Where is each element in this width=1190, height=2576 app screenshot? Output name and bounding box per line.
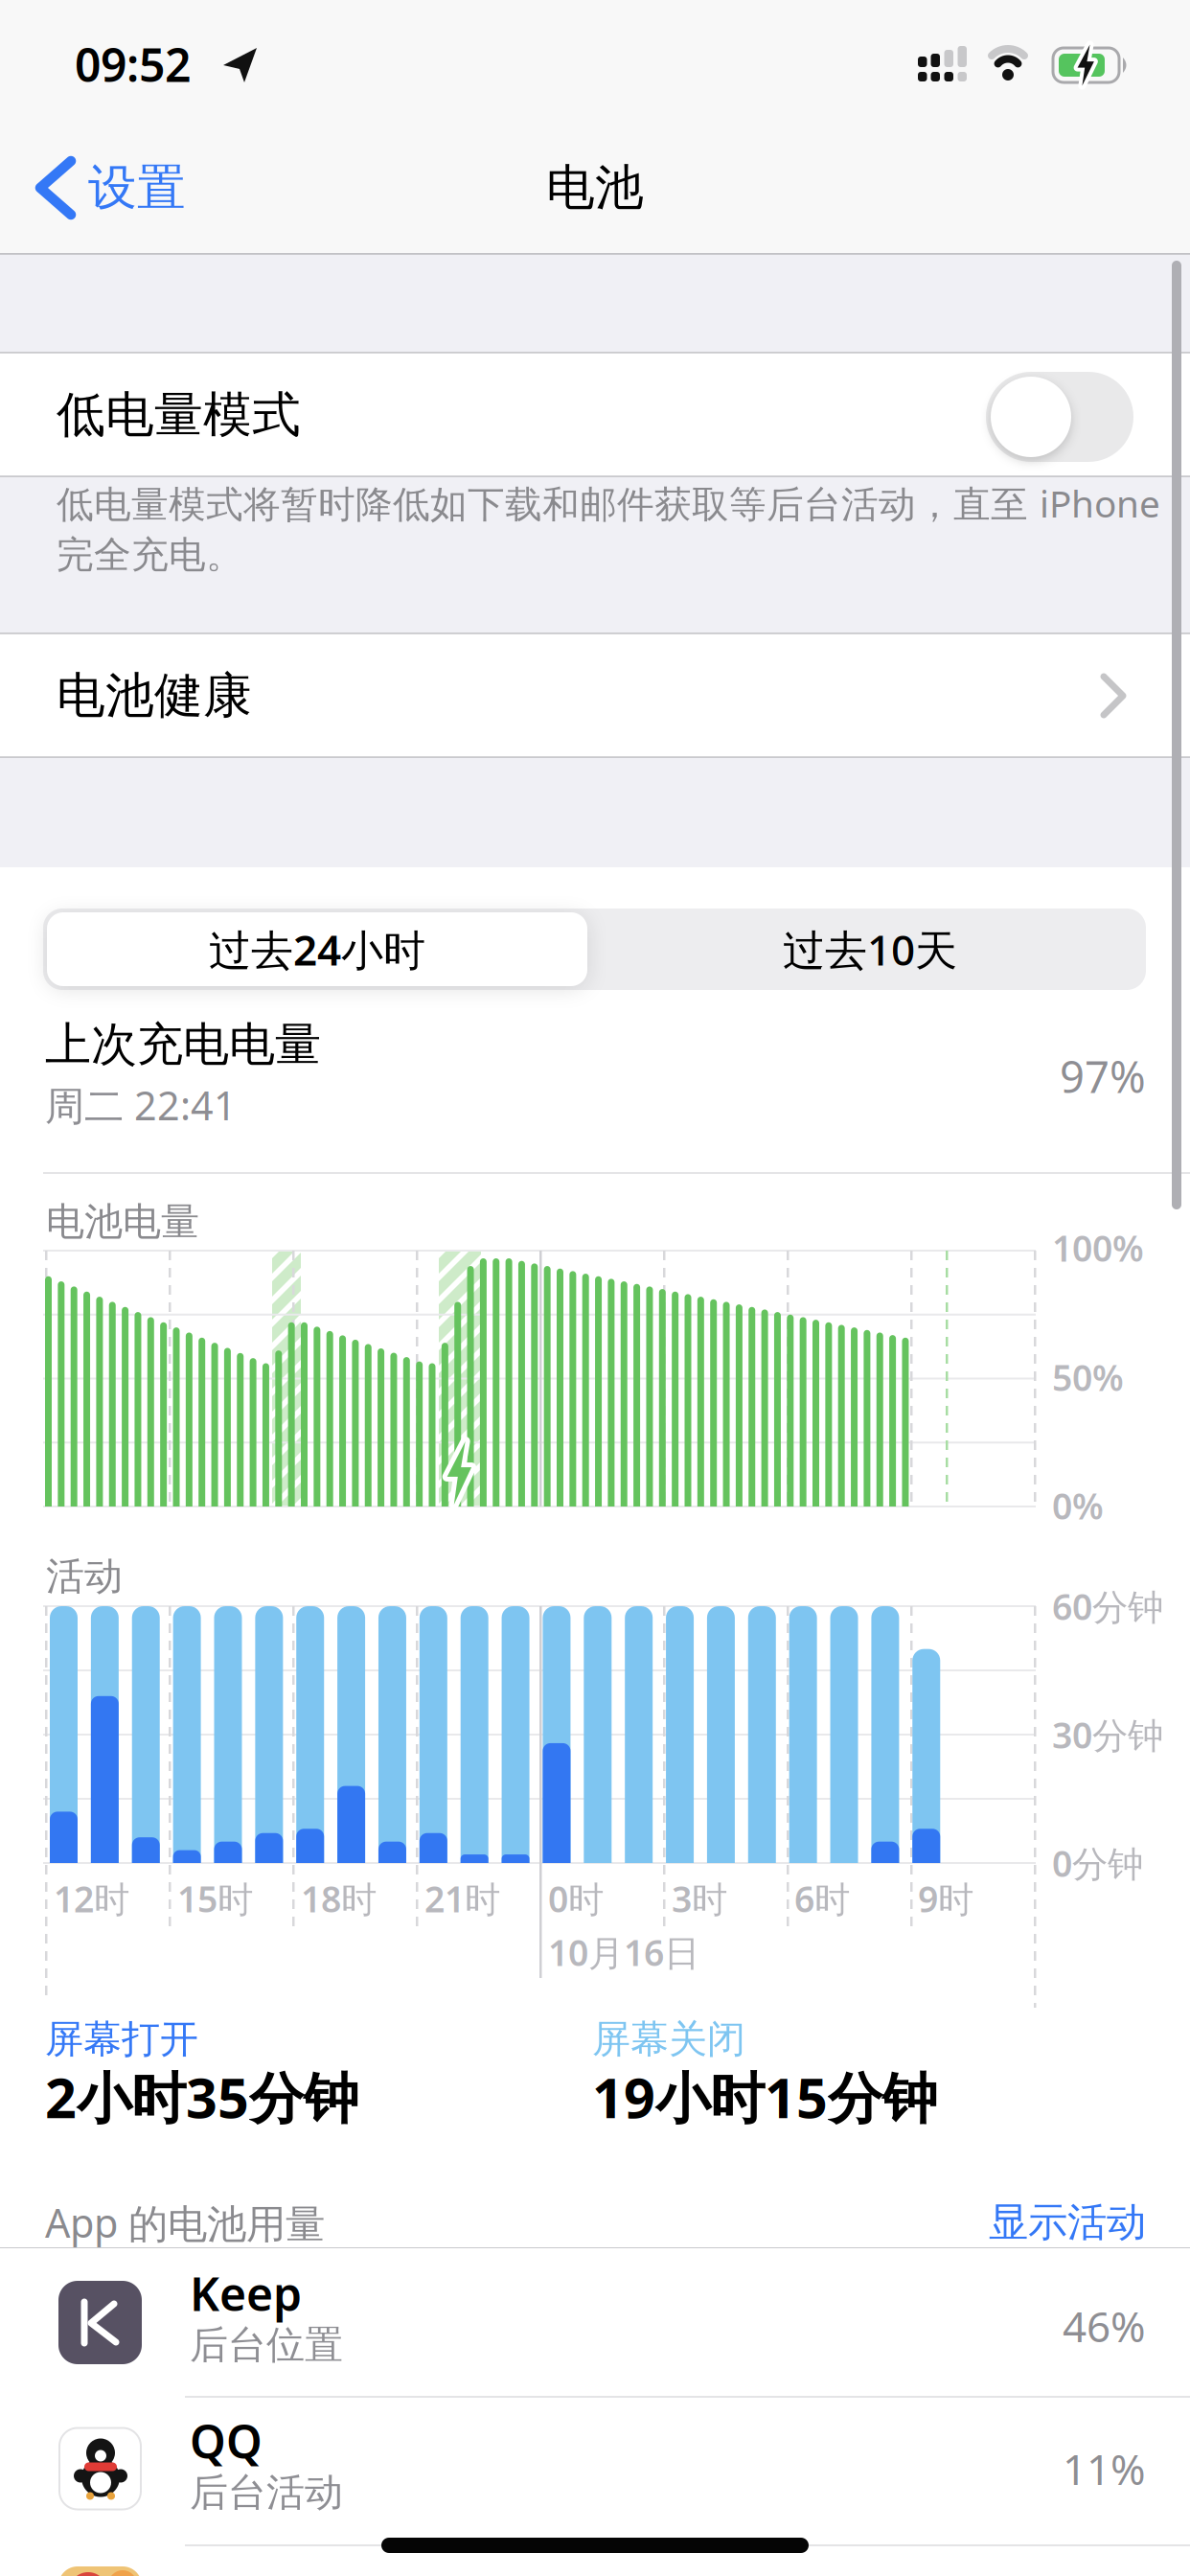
staticText: 9时 <box>918 1875 973 1922</box>
staticText: 0分钟 <box>1052 1839 1143 1887</box>
staticText: 低电量模式 <box>57 385 301 445</box>
staticText: 电池 <box>546 158 644 218</box>
button[interactable]: 设置 <box>0 126 278 249</box>
staticText: QQ <box>190 2410 263 2471</box>
button[interactable]: 显示活动 <box>858 2189 1146 2256</box>
button[interactable]: QQ <box>0 2398 1190 2543</box>
staticText: 19小时15分钟 <box>592 2060 937 2133</box>
staticText: 11% <box>1063 2441 1146 2497</box>
staticText: 15时 <box>177 1875 253 1922</box>
staticText: 设置 <box>88 158 186 218</box>
button[interactable]: 过去10天 <box>602 912 1138 986</box>
staticText: 09:52 <box>75 34 191 95</box>
staticText: 0% <box>1052 1482 1104 1529</box>
button[interactable]: 电池健康 <box>0 634 1190 756</box>
staticText: 后台位置 <box>190 2321 343 2369</box>
staticText: 3时 <box>672 1875 727 1922</box>
staticText: 活动 <box>46 1553 123 1600</box>
staticText: 97% <box>1060 1047 1146 1105</box>
staticText: 电池电量 <box>46 1198 199 1245</box>
staticText: 0时 <box>548 1875 604 1922</box>
staticText: 21时 <box>424 1875 500 1922</box>
staticText: 屏幕关闭 <box>592 2016 745 2063</box>
staticText: 46% <box>1063 2298 1146 2354</box>
staticText: 18时 <box>301 1875 377 1922</box>
staticText: 电池健康 <box>57 666 252 726</box>
button[interactable]: 过去24小时 <box>47 912 587 986</box>
staticText: 100% <box>1052 1224 1144 1272</box>
staticText: 12时 <box>54 1875 129 1922</box>
staticText: 60分钟 <box>1052 1582 1163 1630</box>
staticText: 上次充电电量 <box>45 1016 321 1073</box>
staticText: 10月16日 <box>548 1928 699 1976</box>
staticText: 显示活动 <box>989 2198 1146 2247</box>
staticText: 2小时35分钟 <box>45 2060 358 2133</box>
staticText: 完全充电。 <box>57 532 243 578</box>
staticText: 过去10天 <box>783 921 957 977</box>
staticText: Keep <box>190 2263 302 2324</box>
button[interactable]: 低电量模式 <box>986 372 1133 462</box>
staticText: App 的电池用量 <box>45 2196 325 2249</box>
staticText: 后台活动 <box>190 2469 343 2516</box>
staticText: 周二 22:41 <box>45 1079 237 1131</box>
staticText: 50% <box>1052 1353 1124 1401</box>
staticText: 屏幕打开 <box>45 2016 198 2063</box>
staticText: 过去24小时 <box>209 921 425 977</box>
staticText: 低电量模式将暂时降低如下载和邮件获取等后台活动，直至 iPhone <box>57 478 1160 528</box>
staticText: 6时 <box>794 1875 850 1922</box>
button[interactable]: Keep <box>0 2248 1190 2396</box>
staticText: 30分钟 <box>1052 1711 1163 1758</box>
